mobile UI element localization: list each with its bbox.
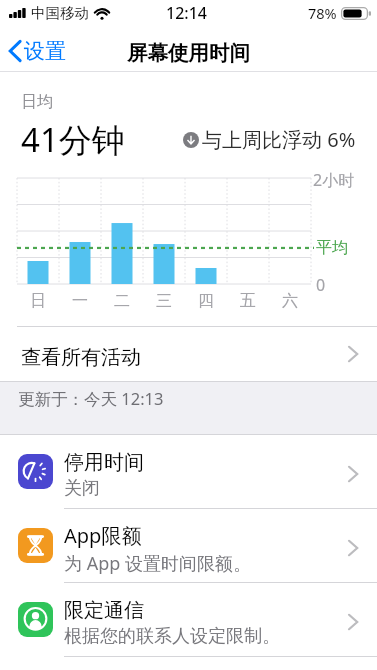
staticText: 六: [282, 291, 298, 311]
staticText: 41分钟: [21, 117, 125, 162]
staticText: 四: [198, 291, 214, 311]
staticText: 关闭: [64, 477, 100, 500]
staticText: 停用时间: [64, 450, 144, 475]
staticText: 与上周比浮动 6%: [202, 126, 356, 153]
staticText: 78%: [308, 3, 337, 23]
staticText: 三: [156, 291, 172, 311]
staticText: 日: [30, 291, 46, 311]
staticText: 二: [114, 291, 130, 311]
button[interactable]: 停用时间: [0, 435, 377, 508]
button[interactable]: App限额: [0, 509, 377, 582]
button[interactable]: 设置: [7, 38, 66, 64]
staticText: 日均: [21, 92, 53, 112]
staticText: 0: [316, 274, 326, 296]
staticText: 查看所有活动: [21, 345, 141, 370]
staticText: 12:14: [166, 2, 207, 24]
staticText: 屏幕使用时间: [127, 40, 250, 66]
button[interactable]: 查看所有活动: [0, 327, 377, 381]
staticText: 为 App 设置时间限额。: [64, 551, 252, 576]
staticText: 更新于：今天 12:13: [18, 387, 164, 410]
staticText: 根据您的联系人设定限制。: [64, 625, 280, 648]
staticText: 五: [240, 291, 256, 311]
staticText: 限定通信: [64, 598, 144, 623]
staticText: 设置: [24, 38, 66, 64]
staticText: App限额: [64, 522, 142, 549]
staticText: 一: [72, 291, 88, 311]
staticText: 平均: [316, 238, 348, 258]
button[interactable]: 限定通信: [0, 583, 377, 656]
staticText: 中国移动: [31, 4, 89, 22]
staticText: 2小时: [313, 169, 355, 191]
